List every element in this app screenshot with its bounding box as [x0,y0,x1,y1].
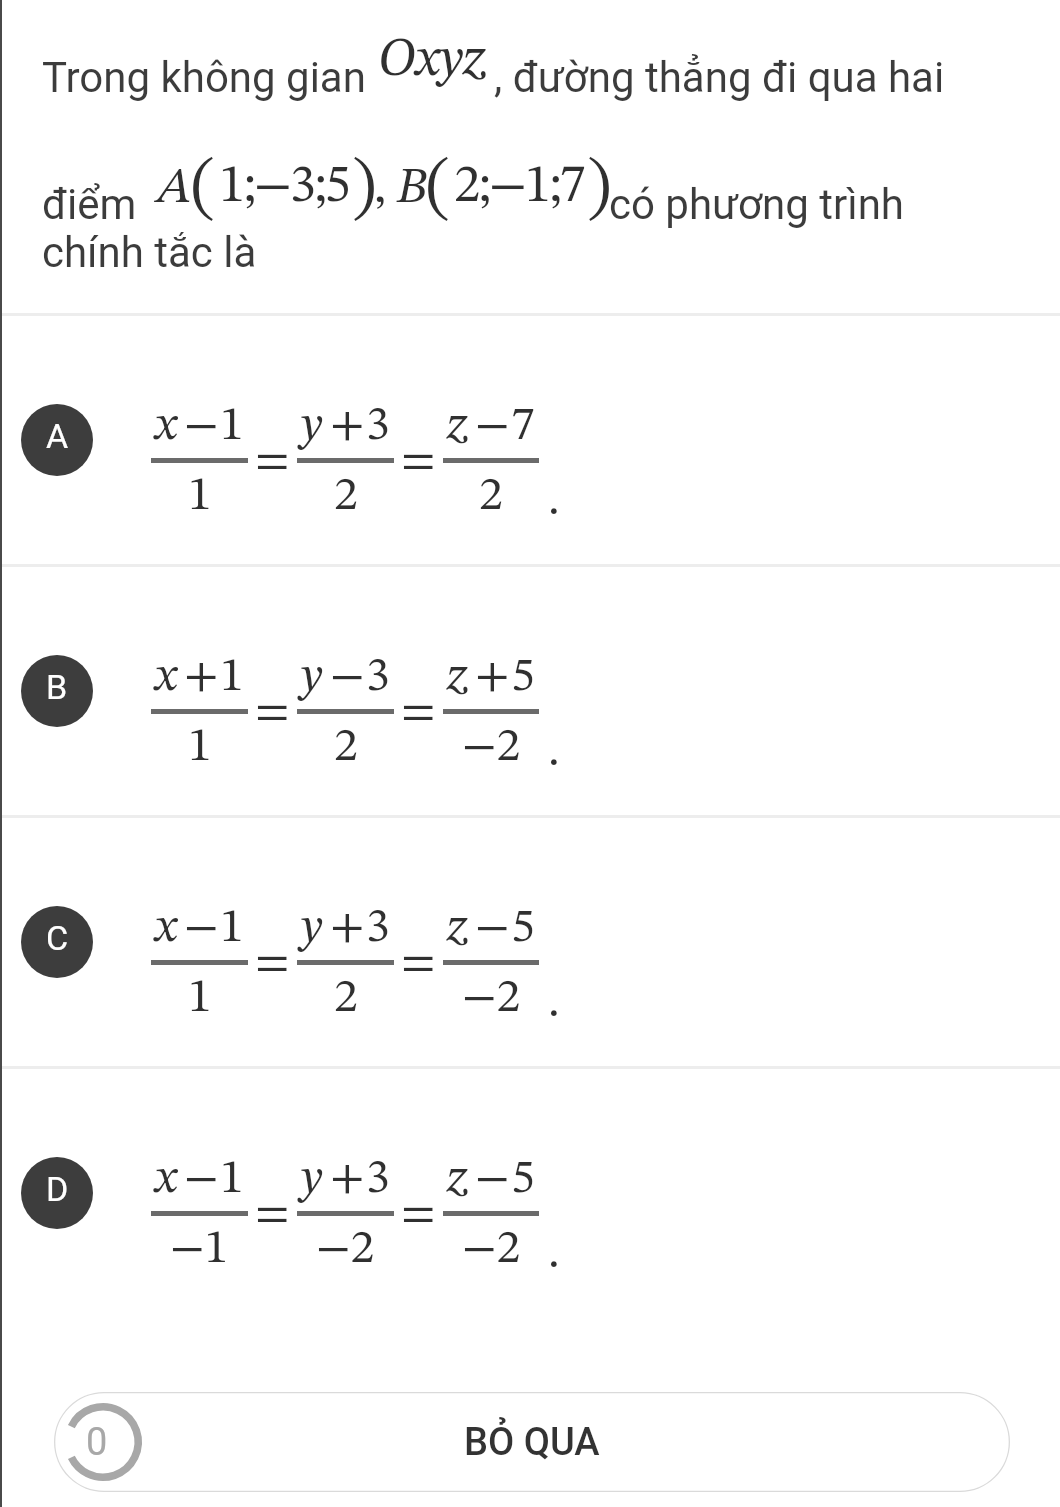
staticText: ( [426,155,451,225]
staticText: Oxyz [378,35,486,88]
staticText: 7 [511,402,535,450]
staticText: 5 [511,904,535,952]
staticText: có phương trình [609,180,904,229]
staticText: Trong không gian [42,53,377,102]
staticText: = [255,437,290,485]
staticText: + [330,1155,365,1203]
staticText: . [548,979,560,1027]
staticText: = [401,437,436,485]
staticText: ) [352,155,377,225]
staticText: 3 [366,1155,390,1203]
staticText: 5 [511,1155,535,1203]
staticText: − [475,402,510,450]
staticText: = [255,1190,290,1238]
staticText: ) [587,155,612,225]
staticText: y [301,653,323,701]
staticText: − [184,904,219,952]
staticText: 2 [334,472,358,520]
staticText: . [548,1230,560,1278]
staticText: = [401,688,436,736]
staticText: 1 [188,723,212,771]
staticText: 2 [479,472,503,520]
staticText: 2 [334,723,358,771]
staticText: 1 [220,1155,244,1203]
staticText: −2 [316,1225,375,1273]
staticText: + [330,904,365,952]
staticText: z [447,904,468,952]
staticText: − [184,1155,219,1203]
staticText: ( [191,155,216,225]
staticText: C [46,918,69,958]
button[interactable]: C [0,818,1060,1066]
staticText: −2 [462,974,521,1022]
staticText: + [184,653,219,701]
staticText: x [155,1155,177,1203]
staticText: . [548,477,560,525]
staticText: −2 [462,723,521,771]
staticText: . [548,728,560,776]
button[interactable]: B [0,567,1060,815]
staticText: + [475,653,510,701]
staticText: = [401,939,436,987]
staticText: 1 [220,904,244,952]
staticText: − [475,904,510,952]
staticText: A [46,416,69,456]
staticText: , đường thẳng đi qua hai [494,53,945,102]
staticText: A [157,164,192,214]
button[interactable]: D [0,1069,1060,1317]
staticText: z [447,402,468,450]
staticText: − [184,402,219,450]
staticText: chính tắc là [42,228,257,277]
staticText: y [301,402,323,450]
staticText: B [397,164,427,214]
staticText: 2 [334,974,358,1022]
staticText: x [155,402,177,450]
staticText: 5 [511,653,535,701]
staticText: 2;−1;7 [454,161,584,214]
staticText: z [447,653,468,701]
staticText: 3 [366,402,390,450]
staticText: 3 [366,904,390,952]
staticText: BỎ QUA [464,1420,600,1465]
staticText: B [46,667,68,707]
staticText: 0 [86,1420,108,1465]
staticText: y [301,1155,323,1203]
staticText: − [330,653,365,701]
staticText: z [447,1155,468,1203]
staticText: y [301,904,323,952]
other: Countdown timer [64,1403,142,1481]
staticText: D [46,1169,69,1209]
staticText: 1 [188,472,212,520]
staticText: + [330,402,365,450]
staticText: , [374,164,387,214]
staticText: −1 [170,1225,229,1273]
button[interactable]: BỎ QUA [54,1392,1010,1492]
staticText: = [255,939,290,987]
staticText: 1 [188,974,212,1022]
staticText: 1 [220,653,244,701]
staticText: = [255,688,290,736]
staticText: −2 [462,1225,521,1273]
staticText: 1 [220,402,244,450]
staticText: điểm [42,180,147,229]
staticText: x [155,653,177,701]
staticText: 1;−3;5 [219,161,349,214]
staticText: x [155,904,177,952]
staticText: = [401,1190,436,1238]
button[interactable]: A [0,316,1060,564]
staticText: 3 [366,653,390,701]
staticText: − [475,1155,510,1203]
